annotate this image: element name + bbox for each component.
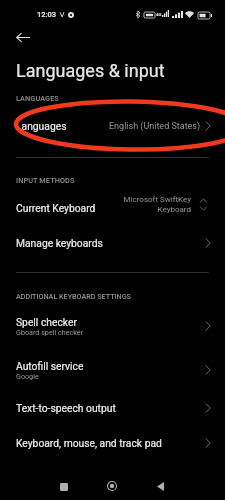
button[interactable]: Spell checker (0, 309, 225, 343)
staticText: Microsoft SwiftKey Keyboard (122, 195, 191, 214)
staticText: LANGUAGES (16, 94, 59, 103)
staticText: INPUT METHODS (16, 176, 75, 185)
staticText: Current Keyboard (16, 202, 122, 214)
staticText: Keyboard, mouse, and track pad (16, 437, 162, 449)
staticText: English (United States) (109, 121, 201, 132)
staticText: Autofill service (16, 360, 84, 372)
button[interactable]: Autofill service (0, 353, 225, 387)
staticText: Google (16, 372, 39, 380)
staticText: Languages (16, 120, 67, 132)
staticText: Text-to-speech output (16, 402, 116, 414)
staticText: 4G (156, 12, 162, 17)
button[interactable]: Navigate up (9, 23, 37, 51)
button[interactable]: Recent apps (50, 473, 78, 500)
staticText: ADDITIONAL KEYBOARD SETTINGS (16, 292, 131, 300)
button[interactable]: Text-to-speech output (0, 393, 225, 423)
staticText: Gboard spell checker (16, 328, 84, 336)
button[interactable]: Manage keyboards (0, 228, 225, 258)
button[interactable]: Current Keyboard (0, 192, 225, 223)
button[interactable]: Keyboard, mouse, and track pad (0, 428, 225, 458)
staticText: Languages & input (16, 60, 165, 81)
staticText: Spell checker (16, 316, 77, 328)
button[interactable]: Home (98, 472, 126, 500)
staticText: Manage keyboards (16, 237, 103, 249)
button[interactable]: Languages (0, 111, 225, 141)
button[interactable]: Back (146, 472, 174, 500)
staticText: 12:03 (37, 10, 57, 19)
